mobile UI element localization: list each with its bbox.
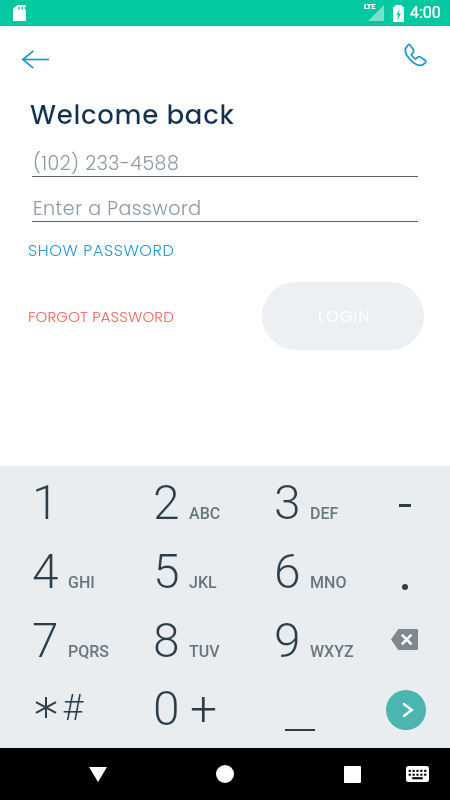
button[interactable]: [363, 539, 450, 607]
staticText: #: [62, 686, 84, 729]
button[interactable]: SHOW PASSWORD: [22, 234, 181, 266]
button[interactable]: Home: [197, 748, 253, 800]
button[interactable]: Hide keyboard: [70, 748, 126, 800]
button[interactable]: Backspace: [363, 608, 450, 676]
staticText: 9: [274, 612, 301, 668]
button[interactable]: #: [0, 676, 121, 744]
staticText: 3: [274, 474, 301, 530]
button[interactable]: [363, 470, 450, 538]
button[interactable]: 5: [121, 539, 242, 607]
staticText: MNO: [310, 573, 347, 592]
button[interactable]: 7: [0, 608, 121, 676]
staticText: FORGOT PASSWORD: [28, 306, 174, 327]
staticText: 2: [153, 474, 180, 530]
button[interactable]: 0: [121, 676, 242, 744]
staticText: 1: [32, 474, 59, 530]
staticText: 4:00: [410, 3, 441, 22]
button[interactable]: 4: [0, 539, 121, 607]
staticText: Welcome back: [30, 97, 235, 133]
button[interactable]: 6: [242, 539, 363, 607]
staticText: 4: [32, 543, 59, 599]
staticText: 5: [153, 543, 180, 599]
button[interactable]: LOGIN: [262, 282, 424, 350]
button[interactable]: Switch keyboard: [391, 748, 444, 800]
button[interactable]: 8: [121, 608, 242, 676]
staticText: SHOW PASSWORD: [28, 239, 175, 261]
staticText: WXYZ: [310, 642, 354, 661]
button[interactable]: 3: [242, 470, 363, 538]
staticText: 8: [153, 612, 180, 668]
staticText: ABC: [189, 504, 221, 523]
button[interactable]: Back: [13, 37, 57, 81]
button[interactable]: 2: [121, 470, 242, 538]
staticText: TUV: [189, 642, 220, 661]
button[interactable]: Recent apps: [324, 748, 380, 800]
staticText: LOGIN: [318, 305, 371, 327]
staticText: JKL: [189, 573, 217, 592]
staticText: 0: [153, 680, 180, 736]
button[interactable]: 1: [0, 470, 121, 538]
staticText: Enter a Password: [33, 195, 202, 222]
button[interactable]: Call: [397, 37, 433, 73]
staticText: GHI: [68, 573, 95, 592]
staticText: (102) 233-4588: [33, 150, 180, 177]
staticText: PQRS: [68, 642, 109, 661]
button[interactable]: Send: [363, 676, 450, 744]
staticText: 6: [274, 543, 301, 599]
staticText: 7: [32, 612, 59, 668]
staticText: +: [190, 680, 218, 736]
button[interactable]: [242, 676, 363, 744]
button[interactable]: 9: [242, 608, 363, 676]
staticText: LTE: [364, 3, 376, 11]
button[interactable]: FORGOT PASSWORD: [22, 301, 180, 332]
staticText: DEF: [310, 504, 339, 523]
